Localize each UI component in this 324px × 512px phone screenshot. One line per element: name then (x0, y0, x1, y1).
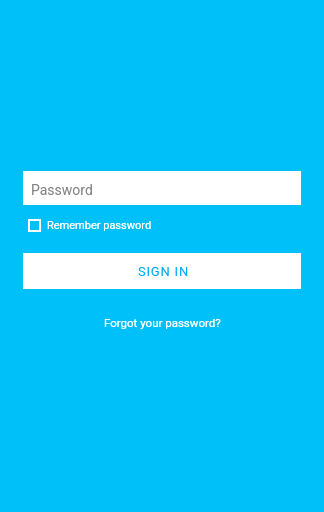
staticText: Remember password (47, 219, 152, 232)
button[interactable]: Forgot your password? (96, 312, 229, 333)
staticText: SIGN IN (138, 264, 190, 279)
button[interactable]: Password (23, 171, 301, 205)
staticText: Password (31, 182, 93, 198)
button[interactable]: SIGN IN (23, 253, 301, 289)
other: Remember password checkbox (28, 219, 41, 232)
button[interactable]: Remember password checkbox (23, 215, 152, 236)
